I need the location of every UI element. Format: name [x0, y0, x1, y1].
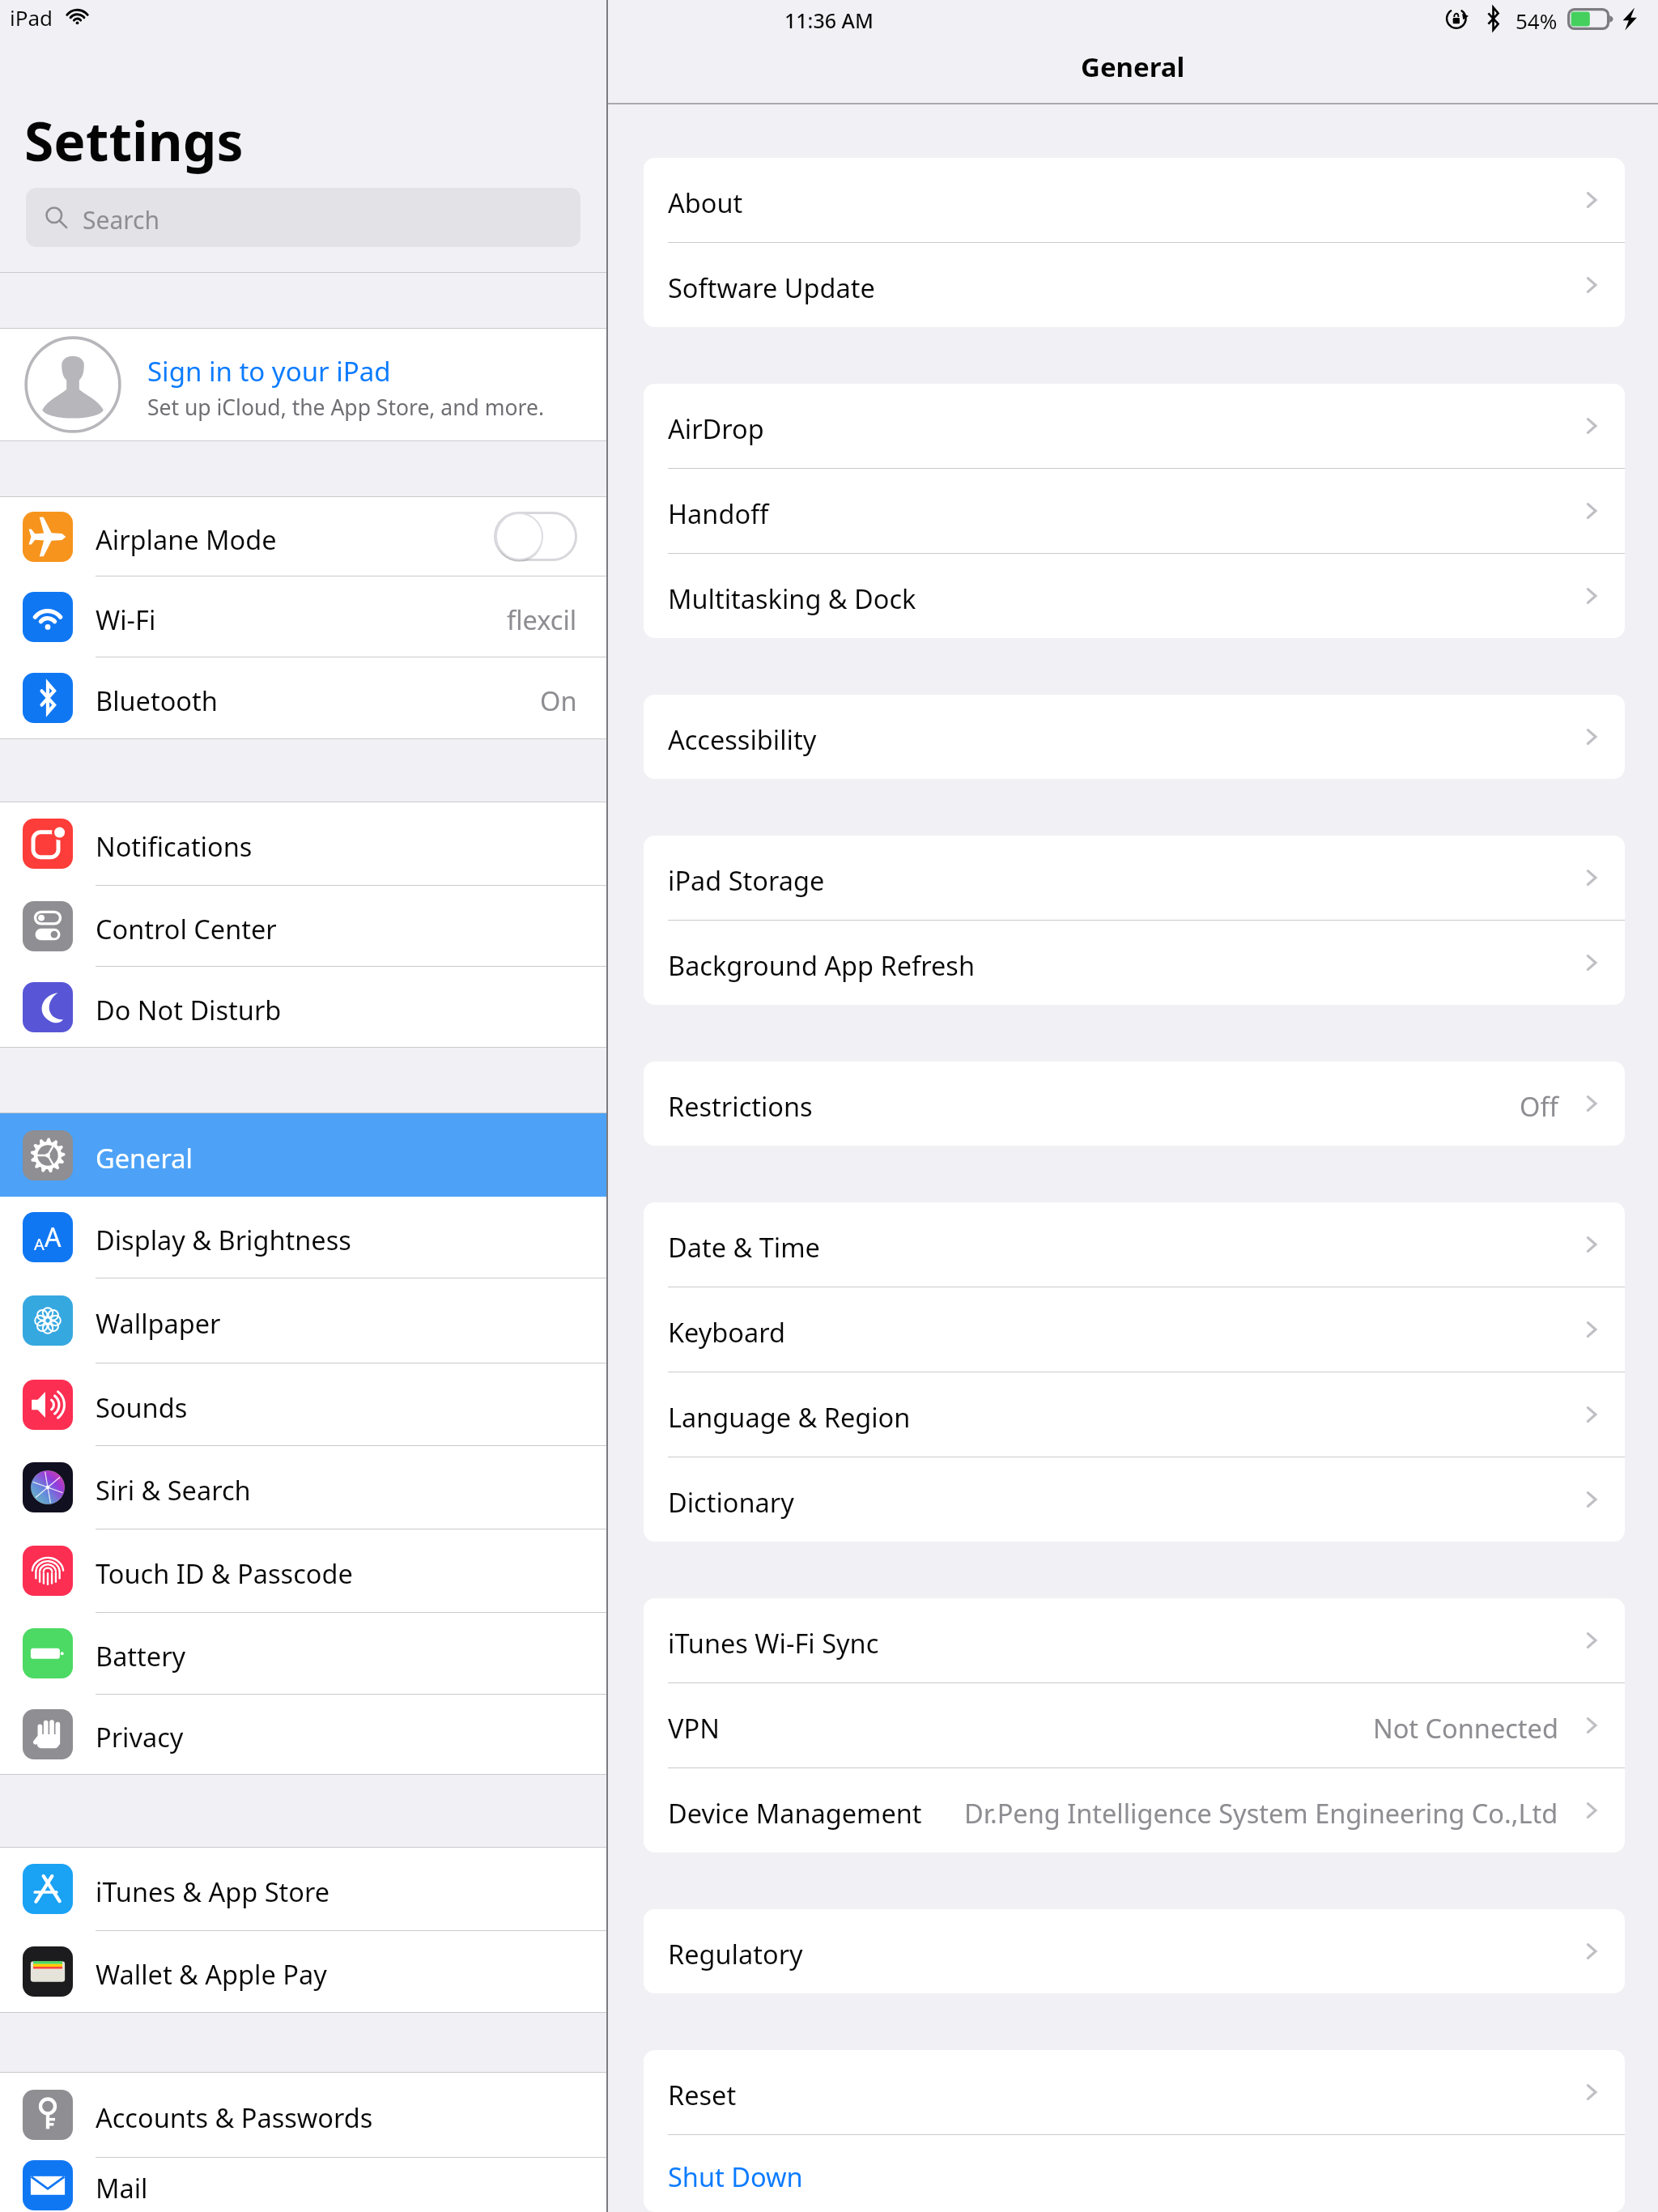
button[interactable]: Handoff — [644, 469, 1625, 553]
staticText: Siri & Search — [96, 1472, 606, 1508]
button[interactable]: iTunes Wi-Fi Sync — [644, 1598, 1625, 1682]
staticText: Accessibility — [668, 721, 817, 757]
other: Bluetooth — [1486, 6, 1501, 31]
button[interactable]: Do Not Disturb — [0, 967, 606, 1047]
staticText: Reset — [668, 2077, 737, 2112]
staticText: AirDrop — [668, 410, 764, 446]
staticText: Background App Refresh — [668, 947, 976, 983]
button[interactable]: Shut Down — [644, 2135, 1625, 2212]
staticText: Off — [1520, 1088, 1558, 1124]
button[interactable]: Accessibility — [644, 695, 1625, 779]
staticText: On — [540, 683, 577, 718]
button[interactable]: Accounts & Passwords — [0, 2073, 606, 2157]
button[interactable]: Airplane Mode toggle — [494, 512, 577, 561]
staticText: iPad — [10, 3, 53, 32]
button[interactable]: iTunes & App Store — [0, 1848, 606, 1930]
button[interactable]: Battery — [0, 1613, 606, 1694]
staticText: Touch ID & Passcode — [96, 1555, 606, 1591]
button[interactable]: Background App Refresh — [644, 921, 1625, 1005]
staticText: flexcil — [507, 602, 577, 637]
staticText: 54% — [1516, 6, 1558, 35]
button[interactable]: Control Center — [0, 886, 606, 966]
button[interactable]: Notifications — [0, 802, 606, 885]
staticText: Set up iCloud, the App Store, and more. — [147, 393, 545, 422]
staticText: Accounts & Passwords — [96, 2099, 606, 2135]
button[interactable]: Regulatory — [644, 1909, 1625, 1993]
staticText: Regulatory — [668, 1936, 803, 1972]
staticText: Bluetooth — [96, 683, 540, 718]
staticText: A — [34, 1233, 45, 1255]
button[interactable]: Touch ID & Passcode — [0, 1529, 606, 1612]
staticText: General — [96, 1140, 606, 1176]
staticText: Date & Time — [668, 1229, 820, 1265]
staticText: iPad Storage — [668, 862, 825, 898]
staticText: Control Center — [96, 911, 606, 946]
button[interactable]: Airplane Mode — [0, 497, 606, 576]
button[interactable]: Software Update — [644, 243, 1625, 327]
staticText: Search — [83, 203, 159, 236]
button[interactable]: About — [644, 158, 1625, 242]
button[interactable]: Language & Region — [644, 1372, 1625, 1457]
staticText: About — [668, 185, 743, 220]
button[interactable]: Device Management — [644, 1768, 1625, 1853]
button[interactable]: AirDrop — [644, 384, 1625, 468]
staticText: Handoff — [668, 496, 769, 531]
button[interactable]: Multitasking & Dock — [644, 554, 1625, 638]
staticText: Do Not Disturb — [96, 992, 606, 1027]
button[interactable]: Sounds — [0, 1363, 606, 1445]
other: Charging — [1621, 7, 1639, 31]
button[interactable]: iPad Storage — [644, 836, 1625, 920]
staticText: Multitasking & Dock — [668, 581, 916, 616]
staticText: Wallet & Apple Pay — [96, 1956, 606, 1992]
other: Battery 54 percent — [1567, 8, 1614, 30]
staticText: Software Update — [668, 270, 875, 305]
staticText: Airplane Mode — [96, 521, 494, 557]
staticText: Notifications — [96, 828, 606, 864]
staticText: Dr.Peng Intelligence System Engineering … — [964, 1795, 1558, 1831]
button[interactable]: Date & Time — [644, 1202, 1625, 1287]
staticText: 11:36 AM — [784, 6, 874, 34]
button[interactable]: Wi-Fi — [0, 576, 606, 657]
staticText: A — [45, 1219, 62, 1255]
button[interactable]: Keyboard — [644, 1287, 1625, 1372]
staticText: Shut Down — [668, 2159, 803, 2194]
staticText: Dictionary — [668, 1484, 794, 1520]
staticText: Language & Region — [668, 1399, 911, 1435]
staticText: Battery — [96, 1638, 606, 1674]
other: Rotation Lock — [1443, 7, 1473, 30]
staticText: iTunes Wi-Fi Sync — [668, 1625, 879, 1661]
button[interactable]: A — [0, 1197, 606, 1278]
staticText: Mail — [96, 2170, 606, 2206]
other: Wi-Fi — [65, 7, 90, 25]
staticText: Not Connected — [1373, 1710, 1558, 1746]
staticText: Display & Brightness — [96, 1222, 606, 1257]
button[interactable]: Search — [26, 188, 580, 247]
staticText: Restrictions — [668, 1088, 813, 1124]
button[interactable]: Wallpaper — [0, 1278, 606, 1363]
button[interactable]: Privacy — [0, 1695, 606, 1774]
staticText: Settings — [24, 104, 244, 177]
button[interactable]: Sign in to your iPad — [0, 329, 606, 440]
button[interactable]: Restrictions — [644, 1061, 1625, 1146]
button[interactable]: Bluetooth — [0, 657, 606, 738]
button[interactable]: Siri & Search — [0, 1446, 606, 1529]
staticText: Sign in to your iPad — [147, 353, 391, 389]
button[interactable]: Reset — [644, 2050, 1625, 2134]
button[interactable]: Dictionary — [644, 1457, 1625, 1542]
staticText: Privacy — [96, 1719, 606, 1755]
button[interactable]: VPN — [644, 1683, 1625, 1767]
button[interactable]: Mail — [0, 2158, 606, 2212]
staticText: Wallpaper — [96, 1305, 606, 1341]
staticText: General — [1081, 49, 1185, 85]
staticText: VPN — [668, 1710, 720, 1746]
staticText: Keyboard — [668, 1314, 786, 1350]
button[interactable]: General — [0, 1113, 606, 1197]
staticText: Wi-Fi — [96, 602, 507, 637]
staticText: Sounds — [96, 1389, 606, 1425]
button[interactable]: Wallet & Apple Pay — [0, 1931, 606, 2012]
staticText: iTunes & App Store — [96, 1874, 606, 1909]
staticText: Device Management — [668, 1795, 922, 1831]
